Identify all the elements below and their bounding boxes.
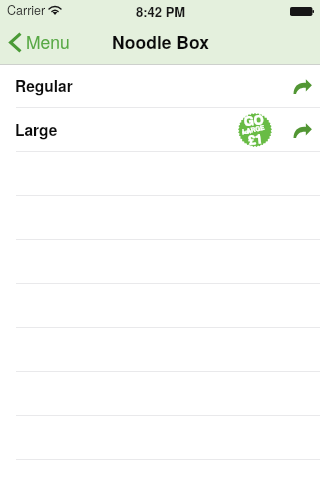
button[interactable]: Regular xyxy=(0,65,320,108)
button[interactable]: Large xyxy=(0,108,320,152)
staticText: GO xyxy=(243,110,265,130)
staticText: Large xyxy=(15,119,58,141)
staticText: 8:42 PM xyxy=(136,2,186,21)
staticText: FOR xyxy=(241,128,251,136)
button[interactable]: Menu xyxy=(0,25,80,59)
staticText: LARGE xyxy=(241,123,266,136)
staticText: Noodle Box xyxy=(112,29,209,54)
button[interactable]: Share xyxy=(289,119,315,141)
staticText: Regular xyxy=(15,75,73,97)
staticText: £1 xyxy=(247,128,264,149)
staticText: Carrier xyxy=(7,1,46,19)
staticText: Menu xyxy=(26,29,70,54)
button[interactable]: Share xyxy=(289,75,315,97)
